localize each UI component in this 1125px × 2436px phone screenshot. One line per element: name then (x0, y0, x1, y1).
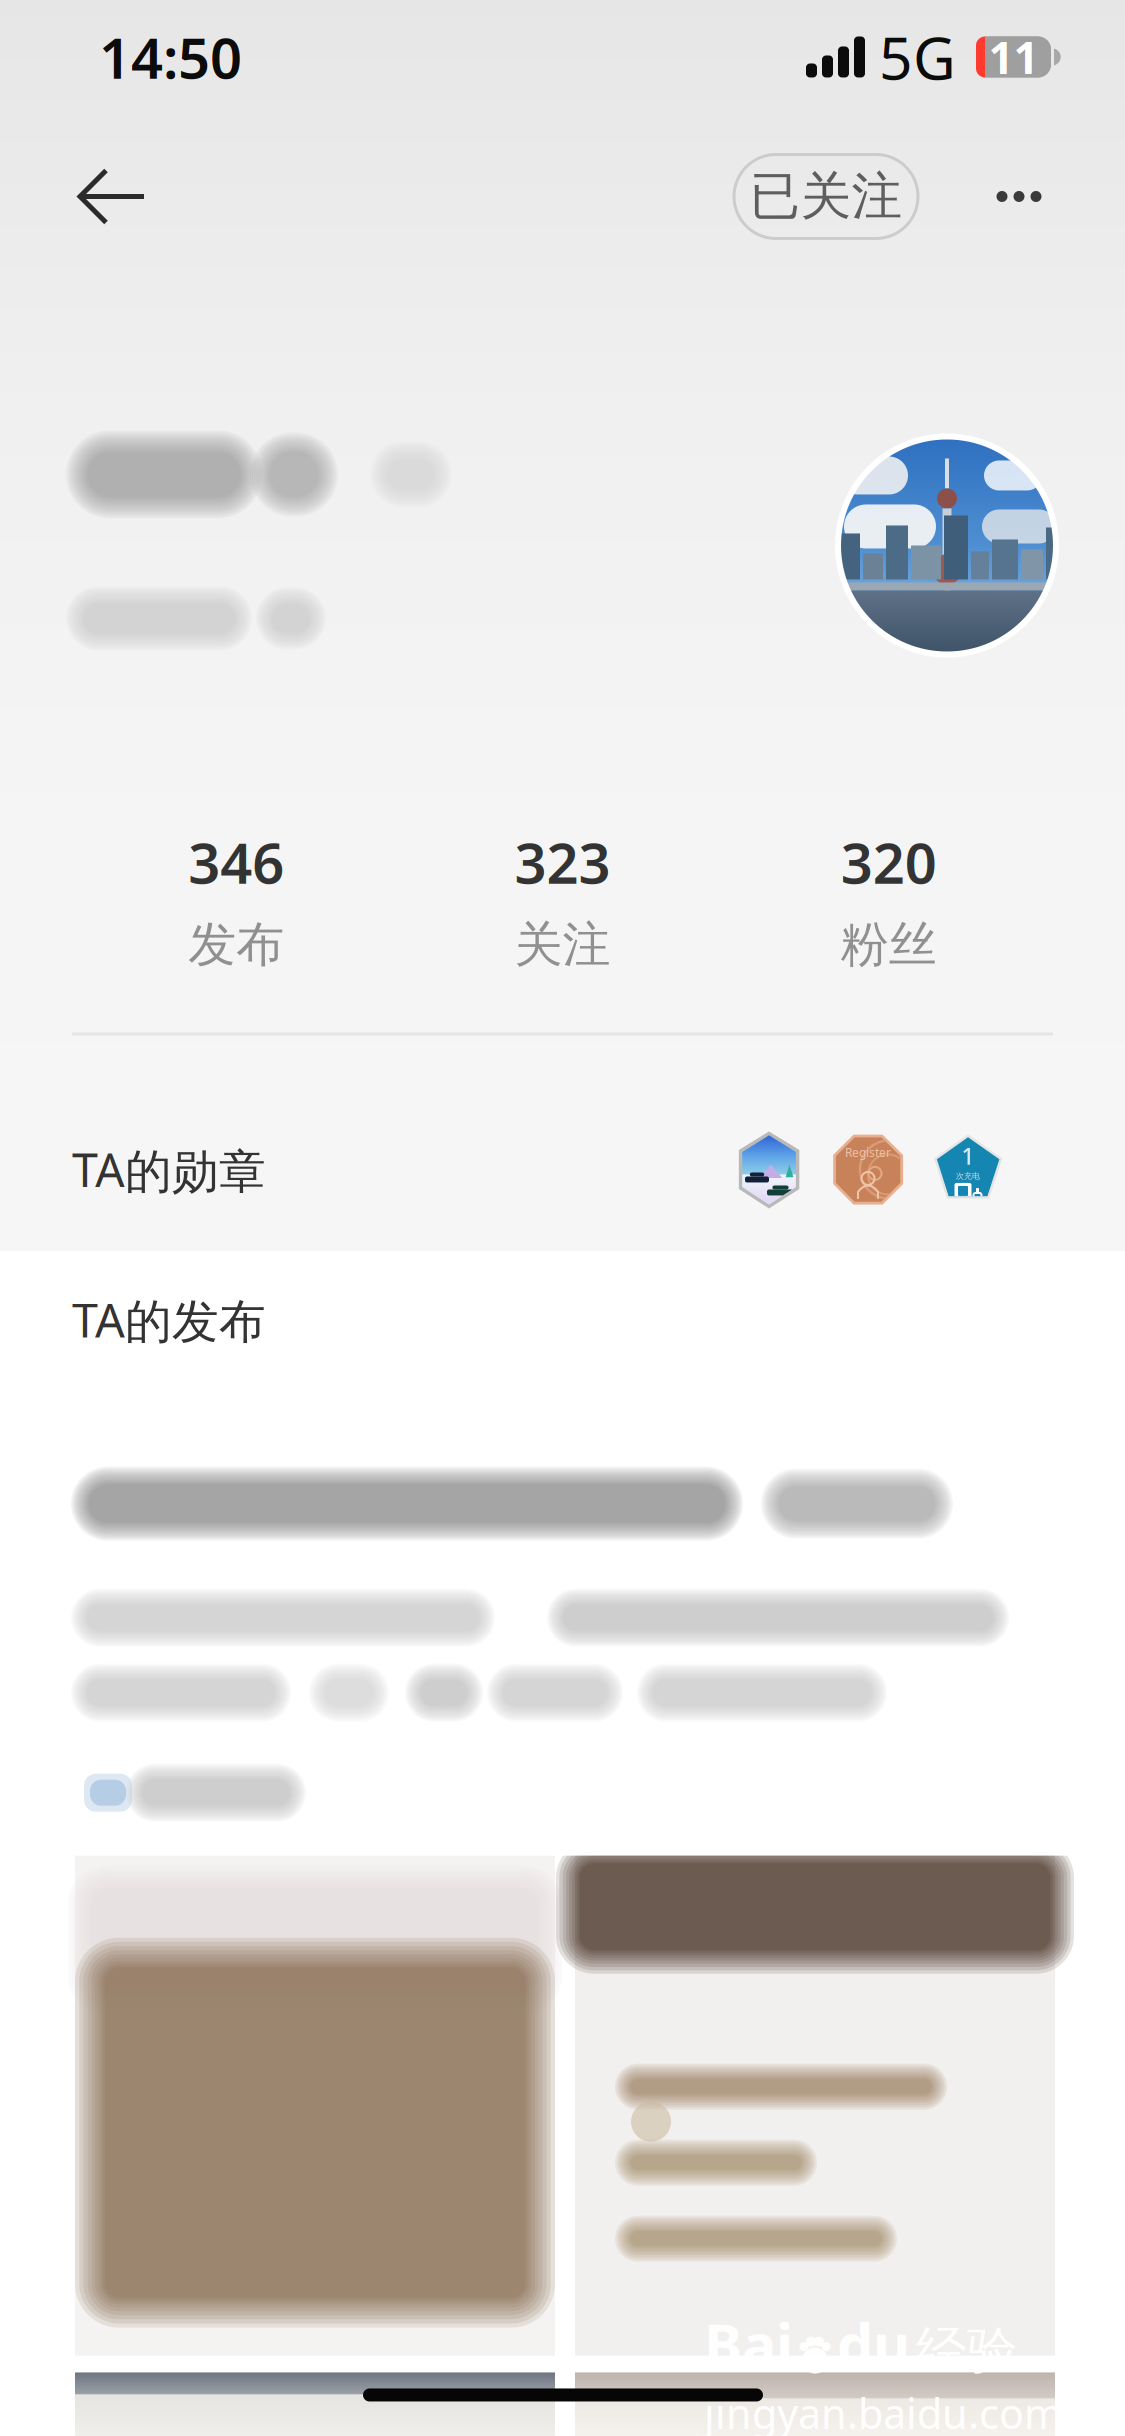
button[interactable]: 346 (73, 819, 399, 980)
staticText: 346 (188, 825, 284, 899)
staticText: 已关注 (749, 165, 902, 228)
staticText: jingyan.baidu.com (704, 2386, 1063, 2436)
staticText: 11 (988, 28, 1038, 86)
staticText: 粉丝 (841, 915, 937, 974)
staticText: 5G (879, 18, 956, 96)
staticText: 14:50 (99, 20, 242, 94)
staticText: TA的勋章 (72, 1138, 266, 1201)
staticText: 323 (514, 825, 610, 899)
button[interactable]: 320 (726, 819, 1052, 980)
staticText: du (837, 2305, 910, 2382)
staticText: 次充电 (956, 1171, 980, 1181)
staticText: 关注 (514, 915, 610, 974)
staticText: 发布 (188, 915, 284, 974)
button[interactable]: 返回 (50, 132, 174, 260)
staticText: 1 (961, 1141, 974, 1171)
staticText: 经验 (916, 2319, 1018, 2382)
staticText: TA的发布 (72, 1288, 266, 1351)
button[interactable]: 已关注 (734, 154, 955, 238)
button[interactable]: 更多 (955, 132, 1083, 260)
staticText: Register (845, 1144, 891, 1160)
button[interactable]: TA的勋章 (0, 1073, 1125, 1265)
staticText: 320 (841, 825, 937, 899)
staticText: Bai (704, 2305, 793, 2382)
button[interactable]: 323 (399, 819, 726, 980)
